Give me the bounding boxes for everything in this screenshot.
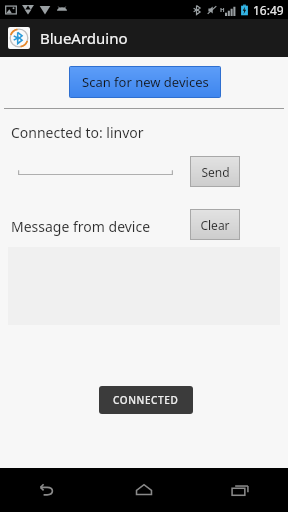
staticText: Connected to: linvor [11, 123, 144, 142]
staticText: Scan for new devices [82, 73, 209, 91]
staticText: BlueArduino [40, 28, 128, 48]
button[interactable]: Recent apps [192, 468, 288, 512]
button[interactable]: Message input [18, 167, 173, 177]
button[interactable]: Home [96, 468, 192, 512]
staticText: Send [201, 164, 230, 180]
staticText: CONNECTED [113, 393, 179, 407]
button[interactable]: Scan for new devices [70, 67, 220, 97]
staticText: Message from device [11, 217, 151, 236]
button[interactable]: Send [191, 157, 239, 186]
staticText: 16:49 [253, 2, 284, 18]
staticText: Clear [200, 217, 230, 233]
staticText: H [220, 6, 225, 14]
button[interactable]: Clear [191, 210, 239, 239]
button[interactable]: Back [0, 468, 96, 512]
